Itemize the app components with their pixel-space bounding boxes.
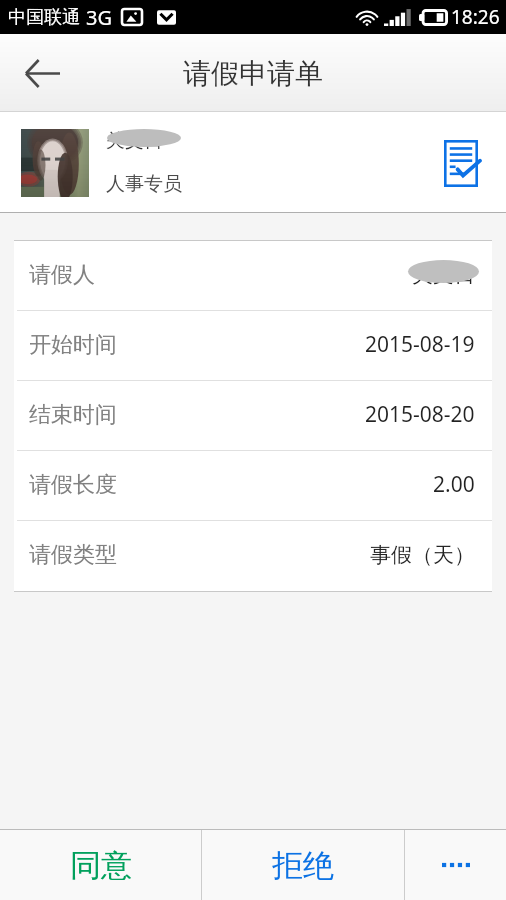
staticText: 2.00 (433, 470, 475, 499)
button[interactable]: 拒绝 (202, 830, 404, 900)
button[interactable]: 请假类型 (14, 521, 492, 591)
staticText: 18:26 (451, 4, 500, 30)
button[interactable]: 同意 (0, 830, 201, 900)
staticText: 结束时间 (29, 401, 117, 429)
staticText: 请假人 (29, 261, 95, 289)
staticText: 2015-08-20 (365, 400, 475, 429)
staticText: 拒绝 (272, 846, 334, 885)
staticText: 请假申请单 (183, 56, 323, 91)
staticText: 开始时间 (29, 331, 117, 359)
staticText: 关文日 (412, 262, 475, 288)
staticText: 3G (86, 4, 112, 31)
staticText: 中国联通 (8, 6, 80, 29)
staticText: 事假（天） (370, 542, 475, 568)
staticText: 请假长度 (29, 471, 117, 499)
staticText: 关文日 (106, 129, 163, 153)
button[interactable]: 开始时间 (14, 311, 492, 381)
button[interactable]: 结束时间 (14, 381, 492, 451)
button[interactable]: 请假长度 (14, 451, 492, 521)
button[interactable]: Back (0, 34, 84, 112)
button[interactable]: More options (405, 830, 506, 900)
staticText: 请假类型 (29, 541, 117, 569)
staticText: 2015-08-19 (365, 330, 475, 359)
button[interactable]: 请假人 (14, 241, 492, 311)
button[interactable]: Approval detail (436, 134, 486, 192)
staticText: 同意 (70, 846, 132, 885)
staticText: 人事专员 (106, 172, 182, 196)
